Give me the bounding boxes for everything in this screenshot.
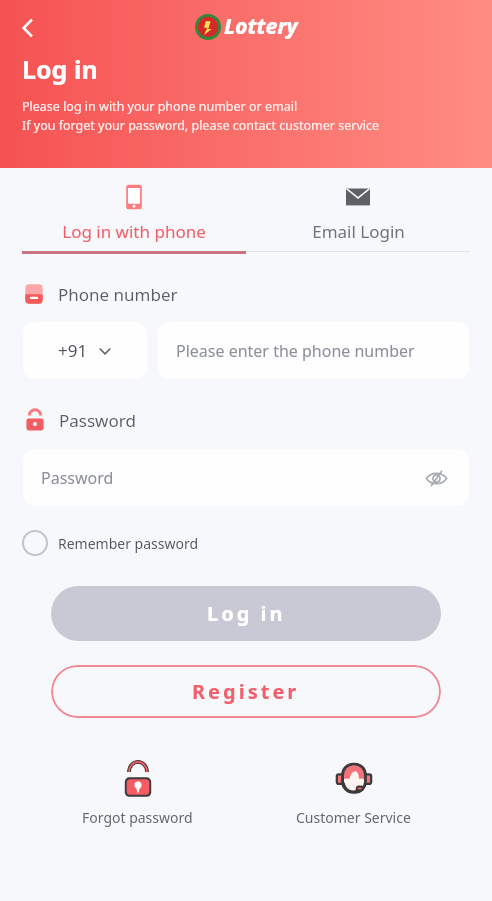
staticText: Customer Service: [296, 808, 411, 827]
staticText: Please log in with your phone number or …: [22, 98, 298, 115]
button[interactable]: Customer Service: [282, 754, 425, 831]
button[interactable]: Please enter the phone number: [158, 322, 469, 379]
button[interactable]: Password: [23, 449, 469, 506]
button[interactable]: Register: [51, 665, 441, 718]
button[interactable]: Log in with phone: [22, 168, 246, 251]
staticText: Log in: [207, 600, 286, 627]
button[interactable]: Show password: [421, 463, 451, 493]
button[interactable]: +91: [23, 322, 147, 379]
staticText: Password: [59, 409, 136, 432]
staticText: Register: [192, 678, 300, 705]
button[interactable]: Forgot password: [68, 754, 207, 831]
staticText: Email Login: [312, 220, 405, 243]
staticText: Password: [41, 467, 114, 489]
staticText: Log in: [22, 52, 98, 86]
staticText: +91: [58, 339, 88, 362]
staticText: Please enter the phone number: [176, 340, 415, 362]
button[interactable]: Log in: [51, 586, 441, 641]
staticText: Forgot password: [82, 808, 193, 827]
staticText: Log in with phone: [62, 220, 206, 243]
button[interactable]: Email Login: [246, 168, 470, 251]
staticText: If you forget your password, please cont…: [22, 117, 380, 134]
button[interactable]: Back: [8, 8, 48, 48]
button[interactable]: Remember password: [22, 528, 207, 558]
staticText: Phone number: [58, 283, 178, 306]
staticText: Remember password: [58, 534, 199, 553]
staticText: Lottery: [224, 12, 298, 41]
